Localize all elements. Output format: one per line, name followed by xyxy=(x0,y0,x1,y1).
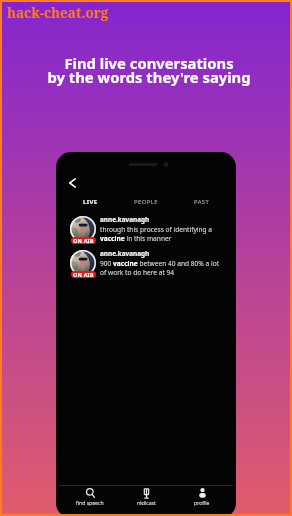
button[interactable]: rédicast xyxy=(118,487,174,507)
staticText: LIVE xyxy=(83,198,98,206)
button[interactable]: Back xyxy=(62,173,82,193)
staticText: Find live conversations by the words the… xyxy=(3,53,292,87)
staticText: PAST xyxy=(194,198,210,206)
button[interactable]: profile xyxy=(174,487,230,507)
staticText: profile xyxy=(194,500,210,507)
staticText: hack-cheat.org xyxy=(7,4,109,22)
button[interactable]: PAST xyxy=(174,196,230,208)
button[interactable]: LIVE xyxy=(62,196,118,208)
staticText: anne.kavanagh xyxy=(100,215,150,224)
staticText: anne.kavanagh xyxy=(100,249,150,258)
staticText: rédicast xyxy=(137,500,156,507)
button[interactable]: ON AIR xyxy=(70,214,228,243)
staticText: ON AIR xyxy=(73,237,94,244)
staticText: ON AIR xyxy=(73,271,94,278)
button[interactable]: find speech xyxy=(62,487,118,507)
button[interactable]: PEOPLE xyxy=(118,196,174,208)
staticText: through this process of identifying a va… xyxy=(100,225,213,243)
staticText: 900 vaccine between 40 and 80% a lot of … xyxy=(100,259,220,277)
staticText: find speech xyxy=(76,500,104,507)
button[interactable]: ON AIR xyxy=(70,248,228,277)
staticText: PEOPLE xyxy=(134,198,158,206)
